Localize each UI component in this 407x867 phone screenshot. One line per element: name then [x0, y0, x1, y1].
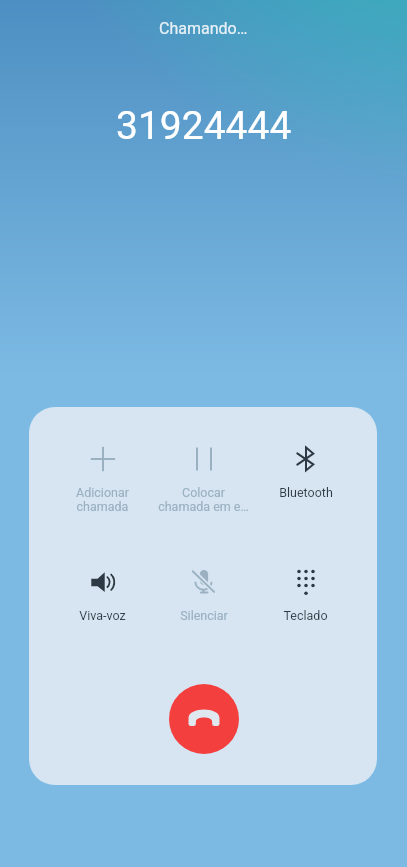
button[interactable]: Bluetooth — [255, 432, 356, 504]
staticText: Bluetooth — [279, 485, 333, 500]
button[interactable]: Colocar chamada em e… — [153, 432, 254, 504]
button[interactable]: Silenciar — [153, 555, 254, 627]
staticText: Chamando… — [159, 19, 248, 38]
staticText: Silenciar — [180, 608, 228, 623]
button[interactable]: Viva-voz — [52, 555, 153, 627]
staticText: Teclado — [283, 608, 328, 623]
staticText: Viva-voz — [79, 608, 126, 623]
button[interactable]: Encerrar chamada — [169, 684, 239, 754]
button[interactable]: Adicionar chamada — [52, 432, 153, 504]
staticText: 31924444 — [116, 103, 292, 149]
button[interactable]: Teclado — [255, 555, 356, 627]
staticText: Colocar chamada em e… — [158, 485, 249, 514]
staticText: Adicionar chamada — [76, 485, 129, 514]
